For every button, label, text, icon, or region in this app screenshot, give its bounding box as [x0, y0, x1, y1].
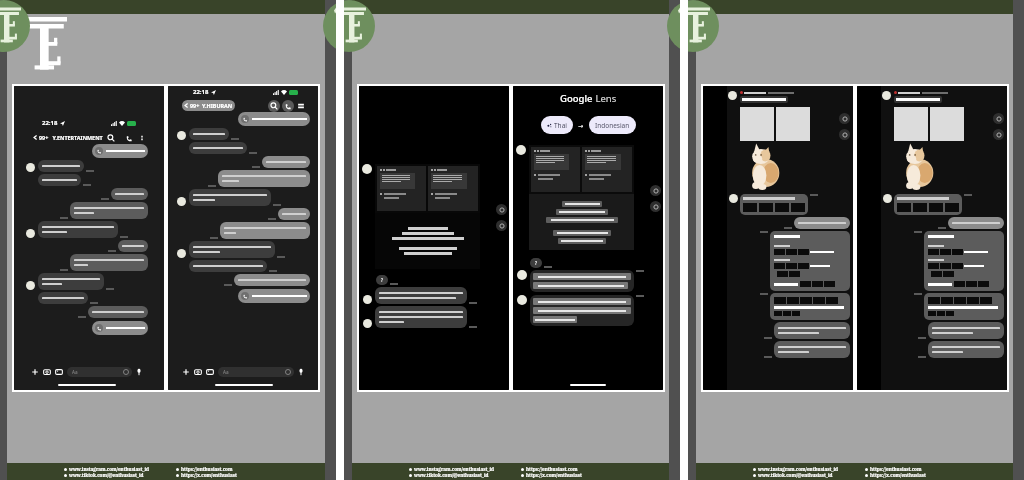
button[interactable]: Call — [125, 134, 133, 142]
button[interactable]: https://enthusiast.com — [865, 466, 922, 472]
button[interactable]: https://x.com/enthusiast — [176, 472, 237, 478]
button[interactable] — [189, 260, 267, 272]
button[interactable] — [375, 287, 467, 304]
staticText: www.tiktok.com/@enthusiast_id — [414, 472, 489, 478]
button[interactable]: www.instagram.com/enthusiast_id — [409, 466, 494, 472]
button[interactable]: Profile — [517, 270, 527, 280]
button[interactable] — [794, 217, 850, 229]
button[interactable] — [118, 240, 148, 252]
button[interactable] — [774, 341, 850, 358]
button[interactable]: Profile — [883, 194, 892, 203]
button[interactable] — [189, 128, 229, 140]
button[interactable] — [70, 202, 148, 219]
button[interactable] — [88, 306, 148, 318]
button[interactable]: Profile — [363, 319, 372, 328]
button[interactable]: Profile — [26, 229, 35, 238]
button[interactable]: 99+ Y.ENTERTAINMENT — [33, 134, 103, 141]
button[interactable]: Menu — [141, 134, 143, 142]
staticText: Aa — [223, 369, 229, 375]
button[interactable]: Share — [839, 113, 850, 124]
button[interactable] — [948, 217, 1004, 229]
button[interactable]: www.instagram.com/enthusiast_id — [64, 466, 149, 472]
staticText: https://x.com/enthusiast — [181, 472, 237, 478]
button[interactable]: Profile — [517, 295, 527, 305]
button[interactable]: Camera — [194, 368, 202, 376]
button[interactable] — [38, 273, 104, 290]
button[interactable] — [262, 156, 310, 168]
button[interactable]: Share — [993, 113, 1004, 124]
button[interactable] — [218, 170, 310, 187]
button[interactable] — [189, 241, 275, 258]
button[interactable]: Add — [31, 368, 39, 376]
button[interactable]: Gallery — [55, 368, 63, 376]
button[interactable]: Profile — [177, 131, 186, 140]
button[interactable]: Add — [182, 368, 190, 376]
button[interactable] — [220, 222, 310, 239]
button[interactable] — [70, 254, 148, 271]
staticText: Google — [560, 92, 593, 105]
button[interactable] — [234, 274, 310, 286]
button[interactable]: Profile — [26, 163, 35, 172]
button[interactable]: Lens — [496, 220, 507, 231]
button[interactable] — [189, 189, 271, 206]
button[interactable]: Profile — [729, 194, 738, 203]
button[interactable]: Profile — [516, 145, 526, 155]
button[interactable] — [928, 341, 1004, 358]
button[interactable]: Profile — [882, 91, 891, 100]
button[interactable] — [38, 174, 81, 186]
staticText: ? — [381, 277, 383, 283]
button[interactable]: www.tiktok.com/@enthusiast_id — [753, 472, 833, 478]
button[interactable]: Menu — [297, 102, 305, 110]
staticText: https://x.com/enthusiast — [526, 472, 582, 478]
button[interactable] — [928, 322, 1004, 339]
button[interactable] — [774, 322, 850, 339]
button[interactable]: Aa — [67, 367, 132, 377]
button[interactable]: Voice — [135, 368, 143, 376]
button[interactable]: Lens — [650, 201, 661, 212]
button[interactable] — [38, 292, 88, 304]
staticText: www.tiktok.com/@enthusiast_id — [758, 472, 833, 478]
button[interactable]: Profile — [177, 197, 186, 206]
button[interactable]: Profile — [362, 164, 372, 174]
button[interactable]: Profile — [728, 91, 737, 100]
button[interactable]: Voice — [297, 368, 305, 376]
staticText: www.instagram.com/enthusiast_id — [758, 466, 838, 472]
button[interactable]: 99+ Y.HIBURAN — [184, 102, 233, 109]
button[interactable]: Gallery — [206, 368, 214, 376]
button[interactable]: Indonesian — [595, 116, 630, 134]
button[interactable] — [38, 221, 118, 238]
button[interactable]: Search — [107, 134, 115, 142]
button[interactable]: Aa — [218, 367, 294, 377]
button[interactable]: Profile — [177, 249, 186, 258]
button[interactable]: Profile — [363, 295, 372, 304]
staticText: https://x.com/enthusiast — [870, 472, 926, 478]
button[interactable] — [375, 306, 467, 328]
button[interactable] — [95, 324, 145, 332]
button[interactable] — [111, 188, 148, 200]
button[interactable]: www.tiktok.com/@enthusiast_id — [409, 472, 489, 478]
button[interactable]: https://enthusiast.com — [176, 466, 233, 472]
button[interactable]: Lens — [993, 129, 1004, 140]
button[interactable]: Share — [650, 185, 661, 196]
button[interactable] — [189, 142, 247, 154]
button[interactable]: www.tiktok.com/@enthusiast_id — [64, 472, 144, 478]
button[interactable] — [533, 298, 631, 323]
button[interactable] — [241, 115, 307, 123]
button[interactable]: https://enthusiast.com — [521, 466, 578, 472]
button[interactable]: https://x.com/enthusiast — [865, 472, 926, 478]
button[interactable]: Search — [270, 102, 278, 110]
button[interactable]: https://x.com/enthusiast — [521, 472, 582, 478]
button[interactable]: Profile — [26, 281, 35, 290]
button[interactable]: Camera — [43, 368, 51, 376]
staticText: → — [578, 122, 584, 129]
button[interactable] — [533, 273, 631, 289]
button[interactable] — [278, 208, 310, 220]
button[interactable] — [38, 160, 84, 172]
button[interactable] — [95, 147, 145, 155]
button[interactable]: Call — [284, 102, 292, 110]
button[interactable]: Thai — [547, 116, 567, 134]
button[interactable] — [241, 292, 307, 300]
button[interactable]: www.instagram.com/enthusiast_id — [753, 466, 838, 472]
button[interactable]: Share — [496, 204, 507, 215]
button[interactable]: Lens — [839, 129, 850, 140]
